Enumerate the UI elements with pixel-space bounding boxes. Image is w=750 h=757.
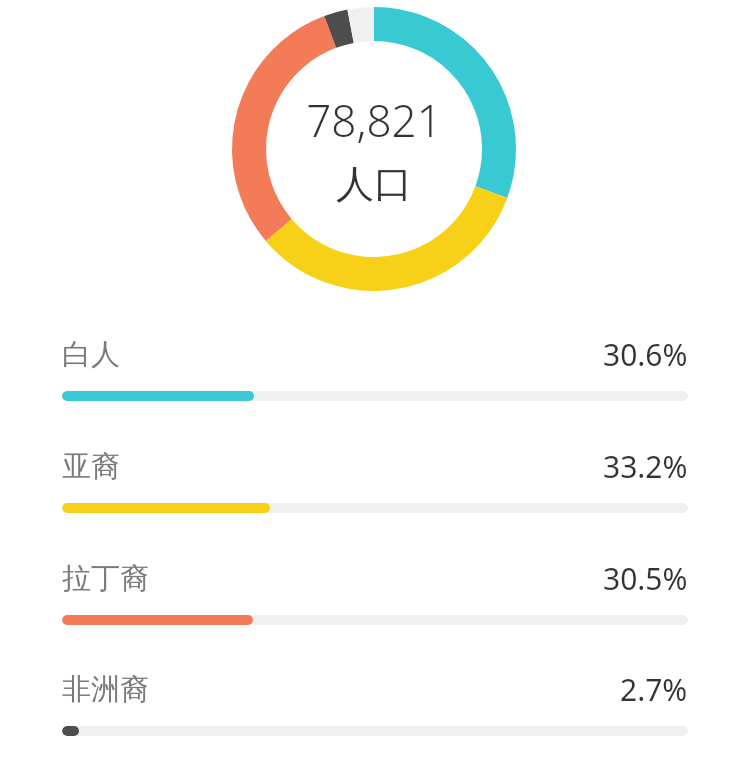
staticText: 2.7% <box>620 669 688 710</box>
staticText: 30.6% <box>603 334 688 375</box>
button[interactable]: 拉丁裔 <box>62 558 688 625</box>
staticText: 白人 <box>62 336 120 373</box>
button[interactable]: 非洲裔 <box>62 669 688 736</box>
button[interactable]: 白人 <box>62 334 688 401</box>
button[interactable]: 亚裔 <box>62 446 688 513</box>
staticText: 亚裔 <box>62 448 120 485</box>
staticText: 78,821 <box>306 90 442 150</box>
staticText: 拉丁裔 <box>62 560 149 597</box>
staticText: 33.2% <box>603 446 688 487</box>
staticText: 30.5% <box>603 558 688 599</box>
staticText: 非洲裔 <box>62 671 149 708</box>
staticText: 人口 <box>336 160 412 208</box>
